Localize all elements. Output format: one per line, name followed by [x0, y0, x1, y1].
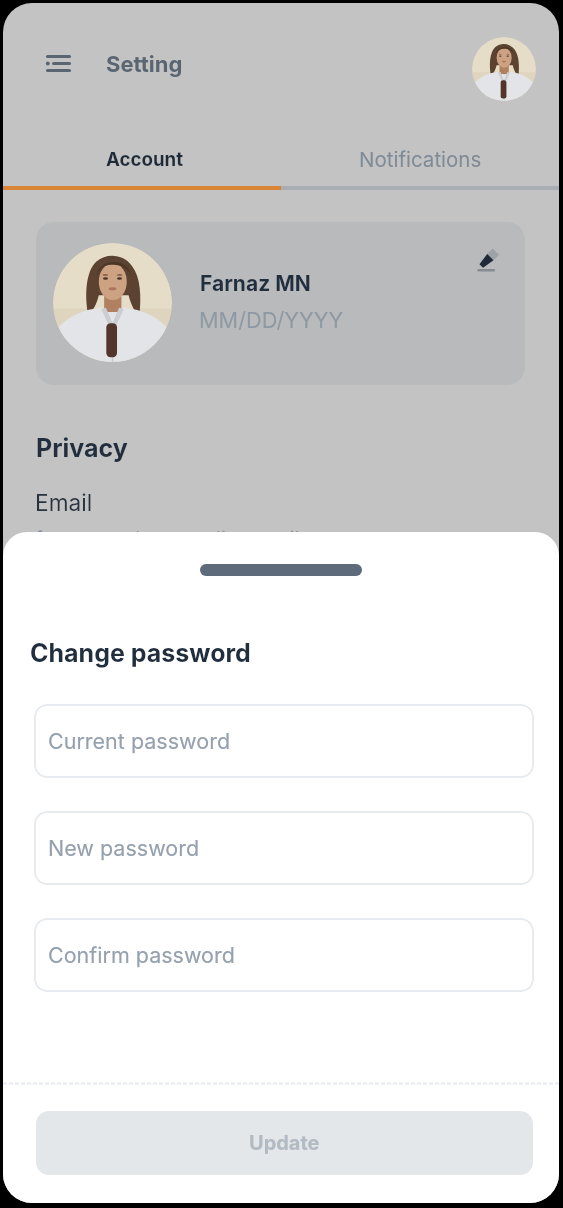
staticText: Confirm password [48, 942, 235, 968]
button[interactable]: Notifications [281, 141, 559, 177]
staticText: Farnaz MN [200, 271, 311, 296]
staticText: Privacy [36, 433, 128, 463]
button[interactable]: New password [34, 811, 534, 885]
staticText: Email [35, 489, 93, 516]
staticText: New password [48, 835, 200, 861]
staticText: Account [106, 148, 184, 171]
staticText: Update [249, 1131, 320, 1155]
staticText: MM/DD/YYYY [199, 307, 344, 333]
staticText: farnaz.mohammadi@gmail.com [35, 527, 349, 552]
staticText: Setting [106, 51, 183, 78]
button[interactable]: Profile [472, 37, 536, 101]
button[interactable]: Farnaz MN [36, 222, 525, 385]
button[interactable]: Current password [34, 704, 534, 778]
staticText: Current password [48, 728, 231, 754]
button[interactable]: Update [36, 1111, 533, 1175]
button[interactable]: Menu [36, 41, 80, 85]
button[interactable]: Account [3, 141, 281, 177]
staticText: Change password [30, 638, 251, 668]
button[interactable]: Confirm password [34, 918, 534, 992]
staticText: Notifications [359, 147, 482, 172]
button[interactable]: Edit profile [471, 242, 505, 276]
